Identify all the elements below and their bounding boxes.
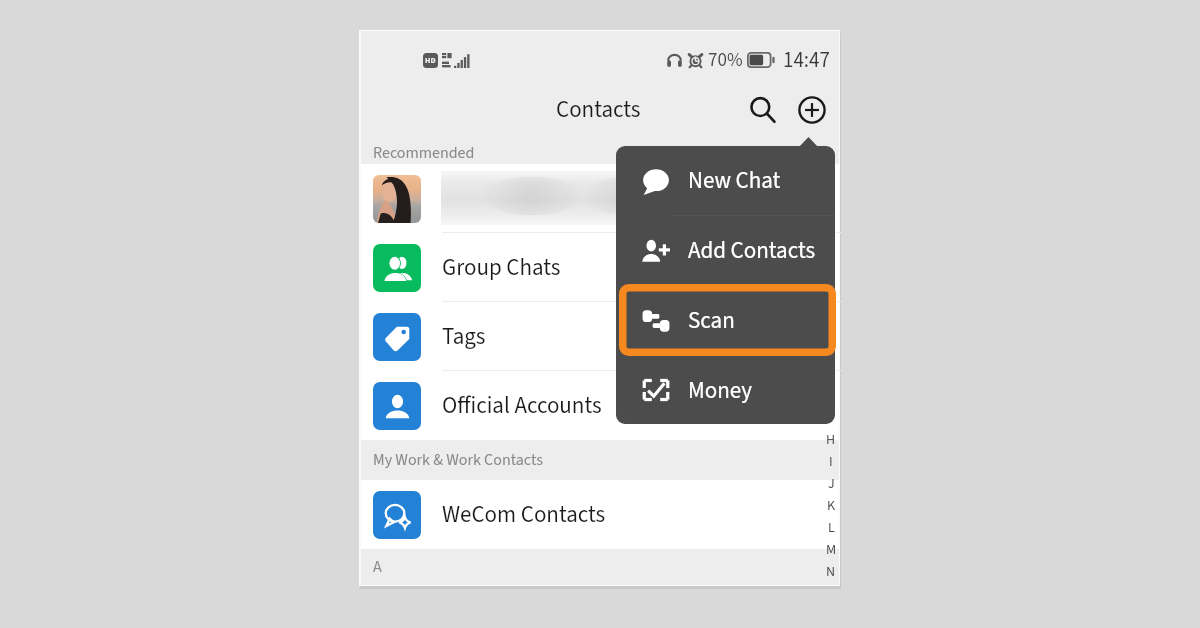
staticText: New Chat [688, 164, 781, 197]
button[interactable]: Money [616, 356, 835, 424]
staticText: L [828, 518, 835, 538]
button[interactable] [361, 164, 839, 233]
button[interactable]: Add Contacts [616, 216, 835, 285]
staticText: Contacts [556, 93, 641, 126]
staticText: My Work & Work Contacts [373, 449, 543, 472]
staticText: A [373, 556, 382, 579]
staticText: Group Chats [442, 251, 561, 284]
staticText: J [828, 474, 835, 494]
staticText: Official Accounts [442, 389, 602, 422]
staticText: Add Contacts [688, 234, 816, 267]
staticText: WeCom Contacts [442, 498, 606, 531]
staticText: I [829, 452, 833, 472]
staticText: 14:47 [783, 45, 830, 75]
staticText: N [826, 562, 836, 582]
staticText: Scan [688, 304, 735, 337]
button[interactable]: New Chat [616, 146, 835, 215]
staticText: Recommended [373, 142, 475, 165]
button[interactable]: Scan [616, 286, 835, 355]
button[interactable]: WeCom Contacts [361, 480, 839, 549]
button[interactable]: Add [791, 92, 833, 127]
staticText: HD [425, 55, 436, 66]
staticText: K [827, 496, 836, 516]
staticText: H [826, 430, 836, 450]
button[interactable]: Official Accounts [361, 371, 839, 440]
staticText: Money [688, 374, 753, 407]
staticText: Tags [442, 320, 486, 353]
button[interactable]: Search [741, 92, 783, 127]
staticText: 70% [708, 47, 743, 74]
staticText: M [826, 540, 837, 560]
button[interactable]: Tags [361, 302, 839, 371]
button[interactable]: Group Chats [361, 233, 839, 302]
